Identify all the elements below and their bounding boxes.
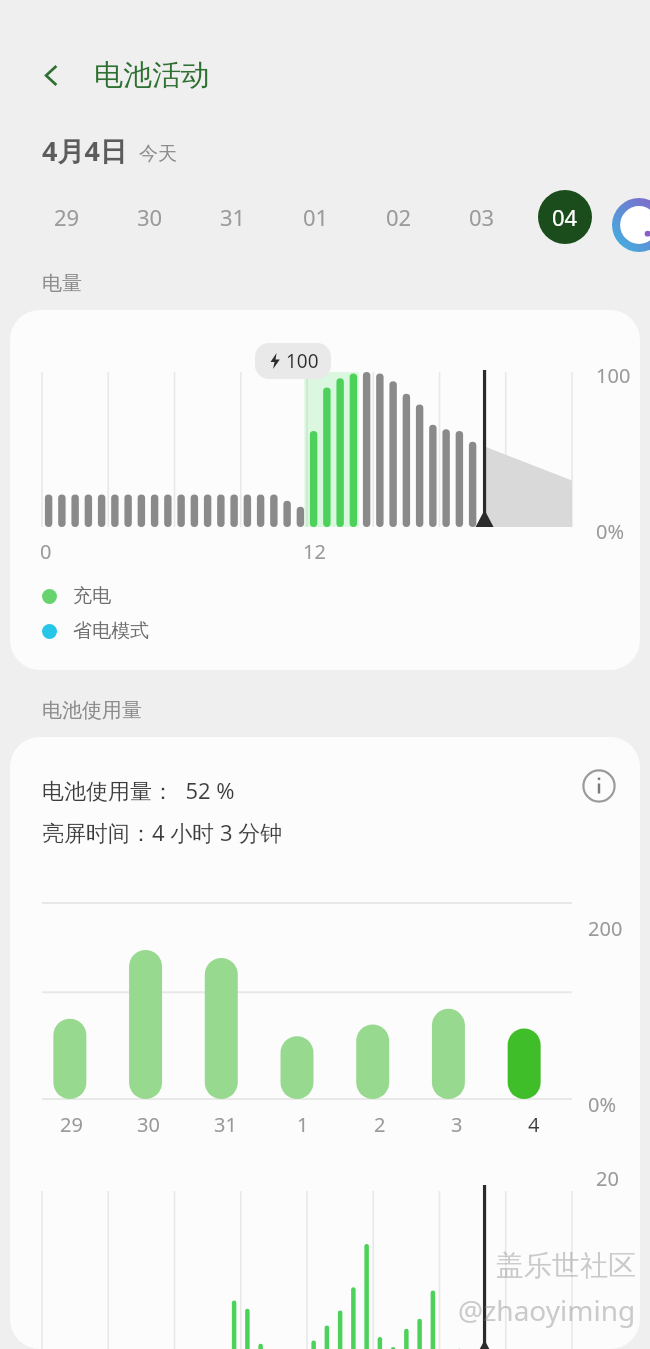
staticText: 31 (220, 202, 246, 232)
staticText: 20 (596, 1165, 619, 1192)
button[interactable]: 29 (26, 185, 108, 249)
staticText: 亮屏时间：4 小时 3 分钟 (42, 817, 283, 847)
staticText: 100 (596, 362, 631, 389)
button[interactable]: 100 (10, 310, 640, 670)
button[interactable]: 30 (108, 185, 191, 249)
staticText: 0 (40, 538, 52, 565)
button[interactable]: 03 (440, 185, 523, 249)
button[interactable]: 充电 (42, 584, 111, 608)
staticText: 30 (137, 202, 163, 232)
staticText: 01 (303, 202, 329, 232)
staticText: 03 (469, 202, 495, 232)
staticText: 29 (54, 202, 80, 232)
staticText: 盖乐世社区 (496, 1248, 636, 1283)
staticText: 4 (528, 1111, 540, 1138)
staticText: 29 (60, 1111, 83, 1138)
staticText: 02 (386, 202, 412, 232)
staticText: 电量 (42, 271, 82, 296)
button[interactable]: 04 (523, 185, 606, 249)
staticText: 0% (588, 1091, 617, 1118)
staticText: 12 (303, 538, 326, 565)
staticText: 3 (451, 1111, 463, 1138)
button[interactable]: 02 (357, 185, 440, 249)
staticText: 充电 (73, 584, 111, 608)
button[interactable]: 电池使用量： 52 % (10, 737, 640, 1349)
button[interactable]: 省电模式 (42, 619, 149, 643)
staticText: 电池使用量： 52 % (42, 775, 235, 805)
staticText: 4月4日 (42, 132, 127, 169)
staticText: 1 (297, 1111, 309, 1138)
staticText: 电池活动 (94, 57, 210, 94)
staticText: 今天 (139, 142, 177, 166)
staticText: 04 (552, 202, 578, 232)
staticText: @zhaoyiming (458, 1291, 636, 1329)
staticText: 省电模式 (73, 619, 149, 643)
button[interactable]: Info (576, 763, 622, 809)
staticText: 30 (137, 1111, 160, 1138)
staticText: 电池使用量 (42, 698, 142, 723)
staticText: 2 (374, 1111, 386, 1138)
staticText: 31 (214, 1111, 237, 1138)
button[interactable]: 31 (191, 185, 274, 249)
staticText: 100 (286, 348, 319, 374)
staticText: 200 (588, 915, 623, 942)
button[interactable]: Back (28, 52, 74, 98)
button[interactable]: 01 (274, 185, 357, 249)
staticText: 0% (596, 518, 625, 545)
